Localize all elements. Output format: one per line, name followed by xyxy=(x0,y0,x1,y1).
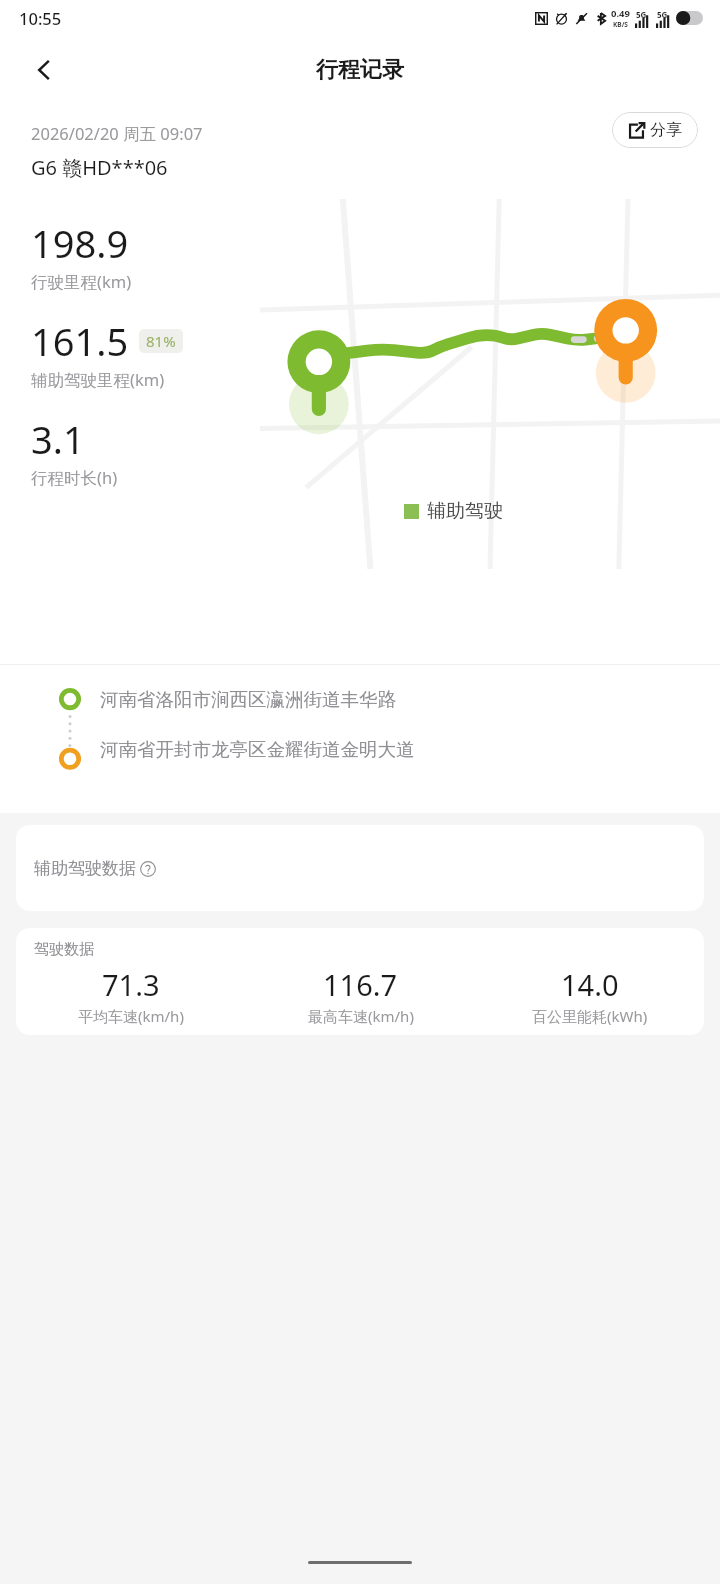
button[interactable]: 116.7 xyxy=(246,965,475,1026)
staticText: 116.7 xyxy=(323,965,398,1004)
staticText: 河南省洛阳市涧西区瀛洲街道丰华路 xyxy=(100,688,396,711)
button[interactable]: 辅助驾驶数据 xyxy=(16,825,704,911)
staticText: G6 赣HD***06 xyxy=(31,154,168,181)
staticText: 平均车速(km/h) xyxy=(78,1006,184,1026)
button[interactable]: 驾驶数据 xyxy=(16,928,704,1035)
staticText: 5G xyxy=(657,9,668,20)
staticText: 分享 xyxy=(650,120,682,140)
staticText: 2026/02/20 周五 09:07 xyxy=(31,122,203,145)
staticText: 行程时长(h) xyxy=(31,466,118,489)
button[interactable]: 71.3 xyxy=(16,965,246,1026)
staticText: 辅助驾驶里程(km) xyxy=(31,368,165,391)
button[interactable]: Back xyxy=(20,46,68,94)
button[interactable]: 14.0 xyxy=(475,965,704,1026)
staticText: 行程记录 xyxy=(316,56,404,84)
staticText: 0.49 xyxy=(611,7,630,20)
staticText: 河南省开封市龙亭区金耀街道金明大道 xyxy=(100,738,415,761)
staticText: 辅助驾驶数据 xyxy=(34,858,136,879)
staticText: 驾驶数据 xyxy=(34,940,94,959)
staticText: 行驶里程(km) xyxy=(31,270,132,293)
staticText: 198.9 xyxy=(31,217,129,269)
staticText: 3.1 xyxy=(31,413,85,465)
staticText: 81% xyxy=(146,331,176,351)
staticText: 辅助驾驶 xyxy=(427,499,503,523)
staticText: 10:55 xyxy=(19,7,62,29)
staticText: 最高车速(km/h) xyxy=(308,1006,414,1026)
staticText: 71.3 xyxy=(102,965,160,1004)
staticText: 百公里能耗(kWh) xyxy=(532,1006,648,1026)
staticText: 14.0 xyxy=(561,965,619,1004)
staticText: KB/S xyxy=(613,20,628,29)
staticText: 161.5 xyxy=(31,315,129,367)
staticText: 5G xyxy=(636,9,647,20)
button[interactable]: 分享 xyxy=(612,112,698,148)
